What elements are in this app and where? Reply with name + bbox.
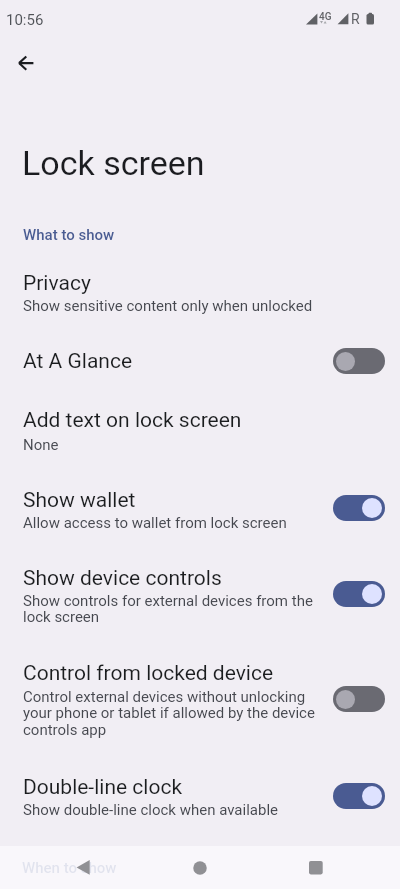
button[interactable] (333, 495, 385, 521)
button[interactable]: Control from locked device (0, 648, 400, 750)
button[interactable]: Double-line clock (0, 762, 400, 824)
staticText: R (351, 11, 360, 27)
staticText: 10:56 (6, 11, 44, 29)
staticText: 4G (319, 11, 332, 23)
staticText: Allow access to wallet from lock screen (23, 514, 321, 532)
button[interactable]: Show wallet (0, 474, 400, 540)
button[interactable] (4, 41, 48, 85)
staticText: None (23, 436, 321, 454)
button[interactable] (333, 783, 385, 809)
staticText: Add text on lock screen (23, 408, 242, 433)
staticText: Show double-line clock when available (23, 801, 321, 819)
staticText: Control from locked device (23, 661, 274, 686)
button[interactable]: Show device controls (0, 553, 400, 637)
button[interactable]: At A Glance (0, 336, 400, 386)
button[interactable] (178, 846, 222, 889)
staticText: At A Glance (23, 349, 133, 374)
staticText: Control external devices without unlocki… (23, 688, 321, 739)
staticText: Privacy (23, 271, 91, 296)
staticText: Show controls for external devices from … (23, 592, 321, 626)
staticText: Show wallet (23, 488, 136, 513)
button[interactable] (294, 846, 337, 889)
staticText: Show sensitive content only when unlocke… (23, 297, 321, 315)
staticText: What to show (23, 226, 115, 244)
button[interactable] (61, 846, 106, 889)
staticText: Show device controls (23, 566, 222, 591)
staticText: Lock screen (22, 143, 205, 183)
button[interactable]: Privacy (0, 258, 400, 330)
staticText: Double-line clock (23, 775, 183, 800)
button[interactable]: Add text on lock screen (0, 394, 400, 462)
button[interactable] (333, 348, 385, 374)
button[interactable] (333, 581, 385, 607)
staticText: When to show (22, 859, 117, 877)
button[interactable] (333, 686, 385, 712)
